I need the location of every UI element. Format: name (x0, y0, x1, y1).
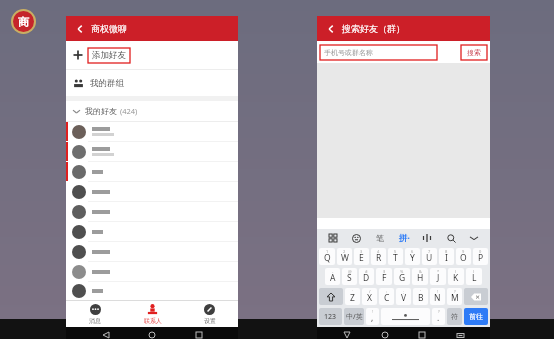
button[interactable]: grid (325, 230, 341, 246)
button[interactable]: 消息 (66, 301, 124, 327)
button[interactable]: $ (376, 268, 392, 285)
button[interactable]: ? (447, 288, 462, 305)
staticText: (424) (120, 106, 138, 116)
button[interactable]: Recents (192, 328, 206, 339)
button[interactable]: % (394, 268, 410, 285)
staticText: @ (348, 269, 352, 274)
staticText: 消息 (89, 317, 101, 325)
staticText: * (437, 269, 440, 274)
button[interactable]: 中/英 (344, 308, 364, 325)
button[interactable]: # (359, 268, 374, 285)
staticText: X (367, 292, 372, 304)
button[interactable] (66, 182, 238, 201)
button[interactable]: voice (419, 230, 435, 246)
button[interactable]: 手机号或群名称 (320, 45, 437, 60)
button[interactable]: Shift (319, 288, 343, 305)
staticText: 商权微聊 (91, 23, 127, 34)
staticText: W (341, 252, 349, 264)
staticText: S (347, 272, 352, 284)
button[interactable]: Keyboard (453, 328, 467, 339)
staticText: Z (350, 292, 355, 304)
staticText: ? (438, 309, 440, 314)
button[interactable]: smiley (348, 230, 364, 246)
button[interactable]: down (466, 230, 482, 246)
button[interactable]: ! (366, 308, 379, 325)
button[interactable] (66, 282, 238, 300)
button[interactable]: 2 (337, 248, 352, 265)
button[interactable]: 6 (405, 248, 420, 265)
button[interactable]: * (430, 268, 446, 285)
button[interactable]: : (379, 288, 394, 305)
button[interactable]: App logo (13, 11, 34, 32)
button[interactable]: Home (145, 328, 159, 339)
staticText: 联系人 (144, 317, 162, 325)
staticText: $ (383, 269, 386, 274)
button[interactable] (66, 142, 238, 161)
button[interactable] (66, 222, 238, 241)
button[interactable]: 123 (319, 308, 342, 325)
button[interactable]: Home (378, 328, 392, 339)
button[interactable]: 7 (422, 248, 437, 265)
button[interactable]: 9 (456, 248, 471, 265)
staticText: 9 (462, 249, 465, 254)
button[interactable]: 我的好友 (66, 101, 238, 121)
button[interactable] (66, 242, 238, 261)
staticText: 搜索 (467, 48, 481, 57)
button[interactable]: 设置 (181, 301, 238, 327)
button[interactable]: Recents (415, 328, 429, 339)
button[interactable]: - (325, 268, 340, 285)
staticText: 123 (324, 312, 337, 322)
button[interactable]: pin (396, 230, 412, 246)
button[interactable]: 8 (439, 248, 454, 265)
button[interactable]: 添加好友 (66, 41, 238, 69)
button[interactable]: 搜索 (461, 45, 487, 60)
staticText: A (330, 272, 336, 284)
staticText: M (451, 292, 459, 304)
staticText: 笔 (376, 233, 384, 243)
staticText: 商 (18, 15, 29, 29)
button[interactable]: & (412, 268, 428, 285)
button[interactable]: @ (342, 268, 357, 285)
button[interactable]: ` (345, 288, 360, 305)
staticText: Q (324, 252, 331, 264)
staticText: V (401, 292, 407, 304)
button[interactable]: pen (372, 230, 388, 246)
button[interactable]: ! (430, 288, 445, 305)
staticText: 3 (360, 249, 363, 254)
button[interactable]: Back (340, 328, 354, 339)
button[interactable] (66, 262, 238, 281)
button[interactable]: 联系人 (124, 301, 181, 327)
button[interactable] (66, 122, 238, 141)
button[interactable]: Back (99, 328, 113, 339)
button[interactable]: ) (466, 268, 482, 285)
staticText: 2 (343, 249, 346, 254)
button[interactable] (66, 202, 238, 221)
staticText: 搜索好友（群） (342, 23, 405, 34)
button[interactable]: ? (432, 308, 445, 325)
button[interactable] (66, 162, 238, 181)
staticText: U (426, 252, 433, 264)
button[interactable]: 1 (319, 248, 335, 265)
button[interactable]: 3 (354, 248, 369, 265)
staticText: . (437, 312, 440, 324)
staticText: - (332, 269, 334, 274)
button[interactable]: Backspace (464, 288, 488, 305)
button[interactable]: ( (448, 268, 464, 285)
button[interactable]: 我的群组 (66, 70, 238, 96)
staticText: 前往 (469, 312, 483, 321)
staticText: ' (420, 289, 421, 294)
button[interactable]: ' (413, 288, 428, 305)
button[interactable]: Back (324, 22, 338, 36)
button[interactable]: search (443, 230, 459, 246)
button[interactable]: Back (73, 22, 87, 36)
staticText: G (399, 272, 406, 284)
button[interactable]: / (362, 288, 377, 305)
button[interactable]: 符 (447, 308, 462, 325)
button[interactable]: 5 (388, 248, 403, 265)
button[interactable]: 4 (371, 248, 386, 265)
button[interactable]: 前往 (464, 308, 488, 325)
staticText: 中/英 (346, 312, 363, 322)
button[interactable]: Space (381, 308, 430, 325)
button[interactable]: 0 (473, 248, 488, 265)
button[interactable]: ; (396, 288, 411, 305)
